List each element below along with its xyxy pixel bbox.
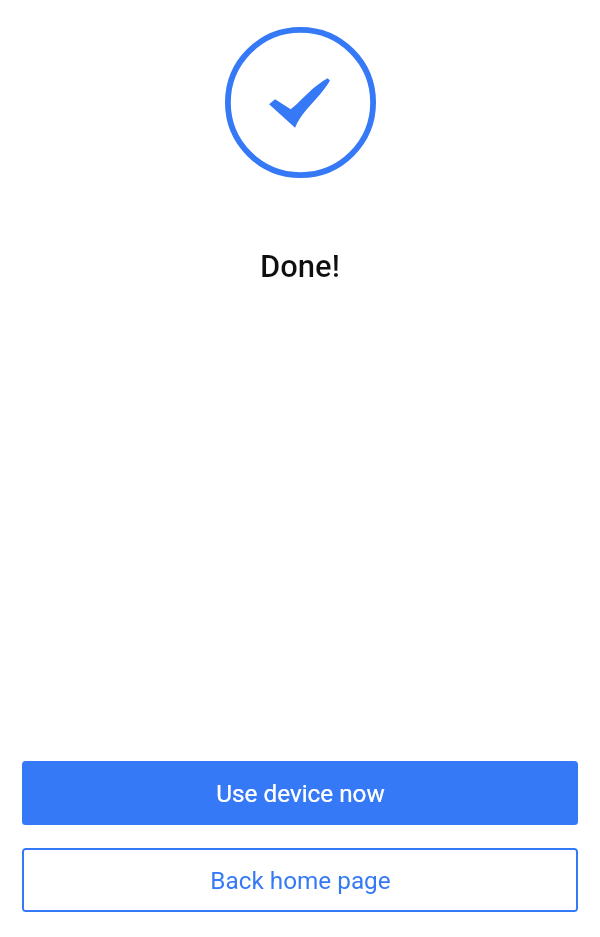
staticText: Done! (260, 248, 340, 284)
button[interactable]: Back home page (22, 848, 578, 912)
button[interactable]: Use device now (22, 761, 578, 825)
other: Success (225, 27, 376, 178)
staticText: Use device now (216, 779, 385, 807)
staticText: Back home page (210, 866, 391, 894)
